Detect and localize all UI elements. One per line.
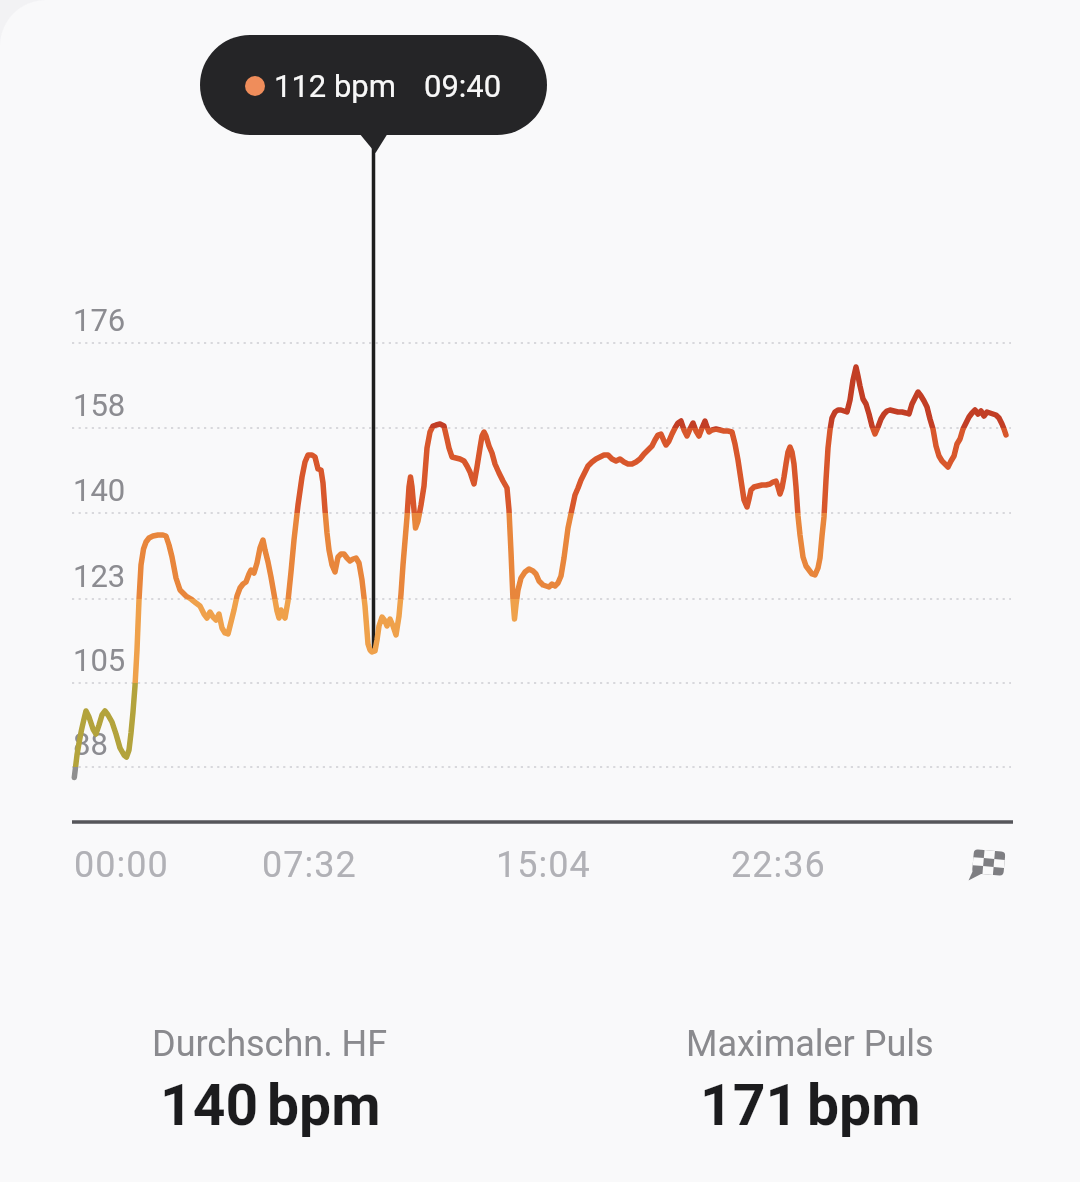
button[interactable]: 112 bpm <box>200 35 547 135</box>
staticText: 09:40 <box>424 68 502 104</box>
staticText: 123 <box>73 558 126 594</box>
staticText: 88 <box>73 726 108 762</box>
staticText: 176 <box>73 302 126 338</box>
staticText: Maximaler Puls <box>686 1023 934 1065</box>
staticText: 00:00 <box>74 844 169 886</box>
staticText: bpm <box>267 1072 381 1139</box>
button[interactable] <box>962 842 1012 888</box>
staticText: 105 <box>73 642 126 678</box>
staticText: 112 bpm <box>274 68 396 104</box>
staticText: 22:36 <box>731 844 826 886</box>
staticText: 140 <box>160 1072 259 1139</box>
staticText: 140 <box>73 472 126 508</box>
staticText: 07:32 <box>262 844 357 886</box>
button[interactable]: Maximaler Puls <box>540 1023 1080 1065</box>
staticText: 171 <box>700 1072 799 1139</box>
staticText: bpm <box>807 1072 921 1139</box>
button[interactable]: Durchschn. HF <box>0 1023 540 1065</box>
staticText: 158 <box>73 387 126 423</box>
staticText: 15:04 <box>496 844 591 886</box>
staticText: Durchschn. HF <box>152 1023 388 1065</box>
